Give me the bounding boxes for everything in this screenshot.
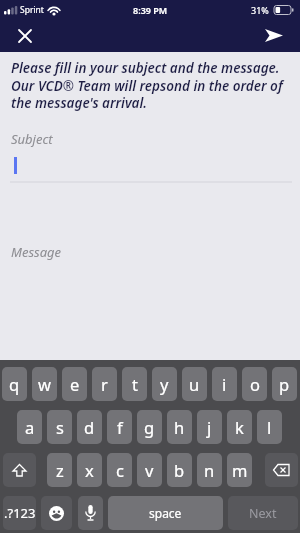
staticText: b [174, 459, 185, 481]
button[interactable]: h [167, 410, 192, 444]
button[interactable]: v [137, 453, 162, 487]
staticText: Subject [11, 130, 53, 148]
button[interactable] [265, 453, 298, 487]
button[interactable]: q [2, 367, 27, 401]
staticText: u [189, 373, 200, 395]
button[interactable]: space [108, 496, 223, 530]
button[interactable]: o [242, 367, 267, 401]
staticText: j [207, 416, 212, 438]
button[interactable]: .?123 [3, 496, 36, 530]
staticText: a [25, 416, 35, 438]
button[interactable]: y [152, 367, 177, 401]
staticText: w [38, 373, 51, 395]
staticText: y [160, 373, 169, 395]
staticText: .?123 [4, 504, 36, 522]
button[interactable]: c [107, 453, 132, 487]
staticText: 8:39 PM [133, 4, 168, 16]
staticText: x [85, 459, 94, 481]
button[interactable]: l [257, 410, 282, 444]
staticText: e [70, 373, 80, 395]
button[interactable]: b [167, 453, 192, 487]
staticText: f [117, 416, 123, 438]
staticText: space [149, 505, 182, 521]
button[interactable]: w [32, 367, 57, 401]
staticText: Next [249, 505, 277, 522]
button[interactable]: Next [228, 496, 298, 530]
button[interactable]: n [197, 453, 222, 487]
staticText: z [56, 459, 64, 481]
staticText: o [250, 373, 260, 395]
button[interactable] [78, 496, 103, 530]
staticText: d [84, 416, 95, 438]
button[interactable]: g [137, 410, 162, 444]
staticText: Sprint [20, 4, 44, 16]
button[interactable]: z [47, 453, 72, 487]
button[interactable]: j [197, 410, 222, 444]
button[interactable] [41, 496, 72, 530]
button[interactable]: i [212, 367, 237, 401]
staticText: h [174, 416, 185, 438]
button[interactable] [12, 23, 38, 49]
staticText: q [9, 373, 20, 395]
button[interactable]: x [77, 453, 102, 487]
staticText: k [235, 416, 244, 438]
staticText: s [56, 416, 64, 438]
button[interactable]: r [92, 367, 117, 401]
button[interactable]: t [122, 367, 147, 401]
button[interactable]: d [77, 410, 102, 444]
button[interactable] [3, 453, 36, 487]
staticText: c [116, 459, 124, 481]
staticText: p [279, 373, 290, 395]
button[interactable]: a [17, 410, 42, 444]
button[interactable]: k [227, 410, 252, 444]
staticText: g [144, 416, 155, 438]
staticText: r [101, 373, 108, 395]
staticText: Message [11, 243, 62, 261]
button[interactable]: p [272, 367, 297, 401]
staticText: m [232, 459, 248, 481]
button[interactable]: m [227, 453, 252, 487]
staticText: v [145, 459, 154, 481]
button[interactable]: s [47, 410, 72, 444]
button[interactable]: e [62, 367, 87, 401]
staticText: n [204, 459, 215, 481]
staticText: i [222, 373, 227, 395]
staticText: t [132, 373, 138, 395]
staticText: 31% [251, 4, 269, 16]
button[interactable] [260, 21, 288, 49]
staticText: Please fill in your subject and the mess… [11, 59, 283, 112]
button[interactable]: f [107, 410, 132, 444]
staticText: l [267, 416, 272, 438]
button[interactable]: u [182, 367, 207, 401]
